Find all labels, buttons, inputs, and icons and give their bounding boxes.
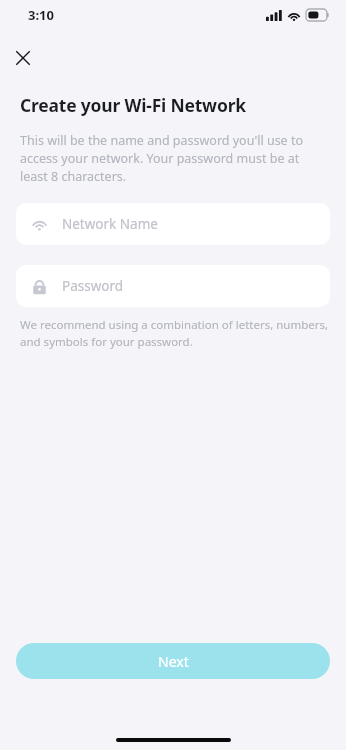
staticText: Network Name: [62, 215, 158, 233]
staticText: This will be the name and password you'l…: [20, 132, 330, 185]
button[interactable]: Next: [16, 643, 330, 679]
staticText: Next: [158, 652, 189, 671]
staticText: We recommend using a combination of lett…: [20, 317, 330, 350]
button[interactable]: Network Name: [16, 203, 330, 245]
staticText: 3:10: [28, 6, 54, 24]
staticText: Create your Wi-Fi Network: [20, 93, 246, 117]
staticText: Password: [62, 277, 124, 295]
button[interactable]: Close: [6, 41, 40, 75]
button[interactable]: Password: [16, 265, 330, 307]
